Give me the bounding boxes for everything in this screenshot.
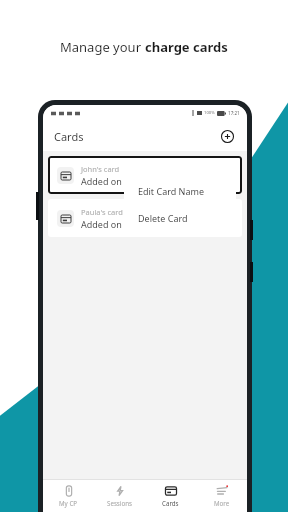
- staticText: 100%: [204, 110, 215, 116]
- button[interactable]: Delete Card: [124, 204, 236, 232]
- staticText: Added on 09/03/2022: [81, 218, 172, 230]
- staticText: Manage your: [60, 38, 145, 56]
- staticText: My CP: [59, 499, 78, 507]
- staticText: Cards: [54, 129, 84, 144]
- button[interactable]: Add card: [216, 125, 238, 147]
- staticText: More: [214, 499, 230, 507]
- button[interactable]: John's card: [48, 156, 242, 194]
- staticText: John's card: [81, 164, 120, 174]
- button[interactable]: Edit Card Name: [124, 177, 236, 204]
- staticText: Delete Card: [138, 212, 188, 224]
- staticText: Sessions: [107, 499, 132, 507]
- staticText: Added on 08/03/2022: [81, 175, 172, 187]
- button[interactable]: Cards: [145, 480, 196, 512]
- button[interactable]: My CP: [43, 480, 94, 512]
- button[interactable]: Sessions: [94, 480, 145, 512]
- staticText: 17:21: [228, 110, 240, 116]
- button[interactable]: More: [196, 480, 247, 512]
- staticText: Cards: [162, 499, 179, 507]
- button[interactable]: Paula's card: [48, 199, 242, 237]
- staticText: Edit Card Name: [138, 185, 204, 197]
- staticText: charge cards: [145, 38, 228, 56]
- staticText: Paula's card: [81, 207, 123, 217]
